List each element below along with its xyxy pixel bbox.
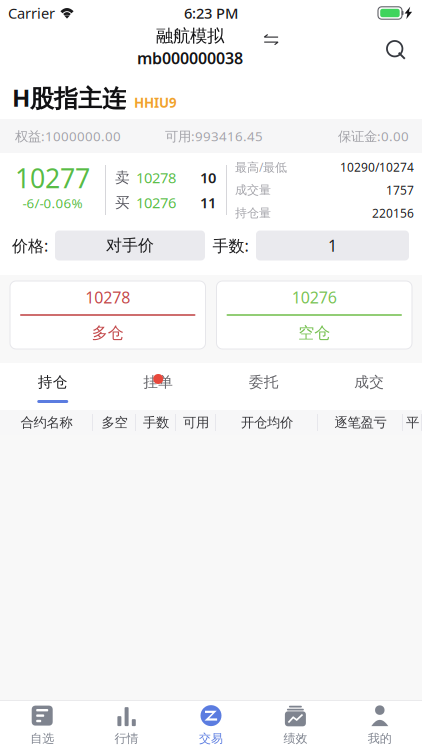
staticText: 1 [328,235,337,256]
button[interactable]: Search [375,29,419,73]
staticText: 融航模拟 [156,25,224,46]
staticText: 开仓均价 [241,414,293,431]
staticText: 空仓 [298,323,330,343]
staticText: 最高/最低 [235,159,287,175]
staticText: 6:23 PM [184,3,238,23]
button[interactable]: 交易 [169,701,253,750]
staticText: -6/-0.06% [22,194,82,212]
staticText: 持仓量 [235,206,271,220]
button[interactable]: Switch account [256,25,286,55]
button[interactable]: 10278 [10,281,205,349]
staticText: 逐笔盈亏 [334,414,386,431]
button[interactable]: 成交 [316,363,422,410]
staticText: 买 [115,193,130,211]
staticText: 挂单 [143,373,173,391]
staticText: 成交量 [235,183,271,197]
staticText: 10278 [85,287,130,308]
staticText: 保证金:0.00 [338,127,409,145]
button[interactable]: 对手价 [55,230,205,260]
staticText: 10278 [136,168,176,187]
staticText: 可用:993416.45 [165,127,263,145]
staticText: 10276 [292,287,337,308]
staticText: 220156 [372,205,414,221]
button[interactable]: 自选 [0,701,84,750]
button[interactable]: 1 [256,230,409,260]
staticText: 10277 [15,160,90,196]
staticText: 对手价 [106,236,154,255]
staticText: 10 [200,168,216,187]
staticText: 成交 [354,373,384,391]
staticText: 我的 [368,731,392,746]
staticText: 绩效 [283,731,307,746]
button[interactable]: 绩效 [253,701,338,750]
staticText: 权益:1000000.00 [15,127,121,145]
staticText: 10290/10274 [340,159,414,175]
staticText: 多仓 [92,323,124,343]
staticText: 平 [406,414,419,431]
staticText: 1757 [386,182,414,198]
staticText: Carrier [8,3,55,23]
staticText: 10276 [136,193,176,212]
staticText: 行情 [115,731,139,746]
staticText: 可用 [183,414,209,431]
staticText: 11 [200,193,216,212]
button[interactable]: 委托 [211,363,316,410]
button[interactable]: 持仓 [0,363,105,410]
button[interactable]: 融航模拟 [125,26,255,68]
staticText: 自选 [30,731,54,746]
button[interactable]: 我的 [338,701,422,750]
staticText: 手数: [212,235,248,256]
staticText: 交易 [199,731,223,746]
button[interactable]: 10276 [216,281,412,349]
staticText: 卖 [115,168,130,186]
staticText: 持仓 [38,373,68,391]
staticText: 价格: [12,235,48,256]
staticText: 手数 [143,414,169,431]
staticText: HHIU9 [134,94,177,111]
staticText: 合约名称 [20,414,72,431]
button[interactable]: 挂单 [105,363,211,410]
button[interactable]: 行情 [84,701,169,750]
staticText: mb000000038 [137,47,243,69]
staticText: 多空 [101,414,127,431]
staticText: 委托 [249,373,279,391]
staticText: H股指主连 [12,81,126,113]
